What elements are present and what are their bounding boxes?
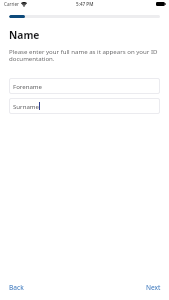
button[interactable]: Surname <box>9 98 160 114</box>
staticText: Carrier <box>4 1 19 7</box>
staticText: 5:47 PM <box>76 1 94 7</box>
other: Wi-Fi signal <box>21 2 27 7</box>
staticText: Next <box>146 283 161 292</box>
staticText: Name <box>9 28 40 42</box>
button[interactable]: Forename <box>9 78 160 94</box>
button[interactable]: Next <box>136 279 169 296</box>
staticText: Forename <box>13 82 42 90</box>
staticText: Surname <box>13 102 39 110</box>
staticText: Please enter your full name as it appear… <box>9 47 159 63</box>
other: Battery full <box>156 2 166 6</box>
staticText: Back <box>9 283 24 292</box>
button[interactable]: Back <box>0 279 34 296</box>
